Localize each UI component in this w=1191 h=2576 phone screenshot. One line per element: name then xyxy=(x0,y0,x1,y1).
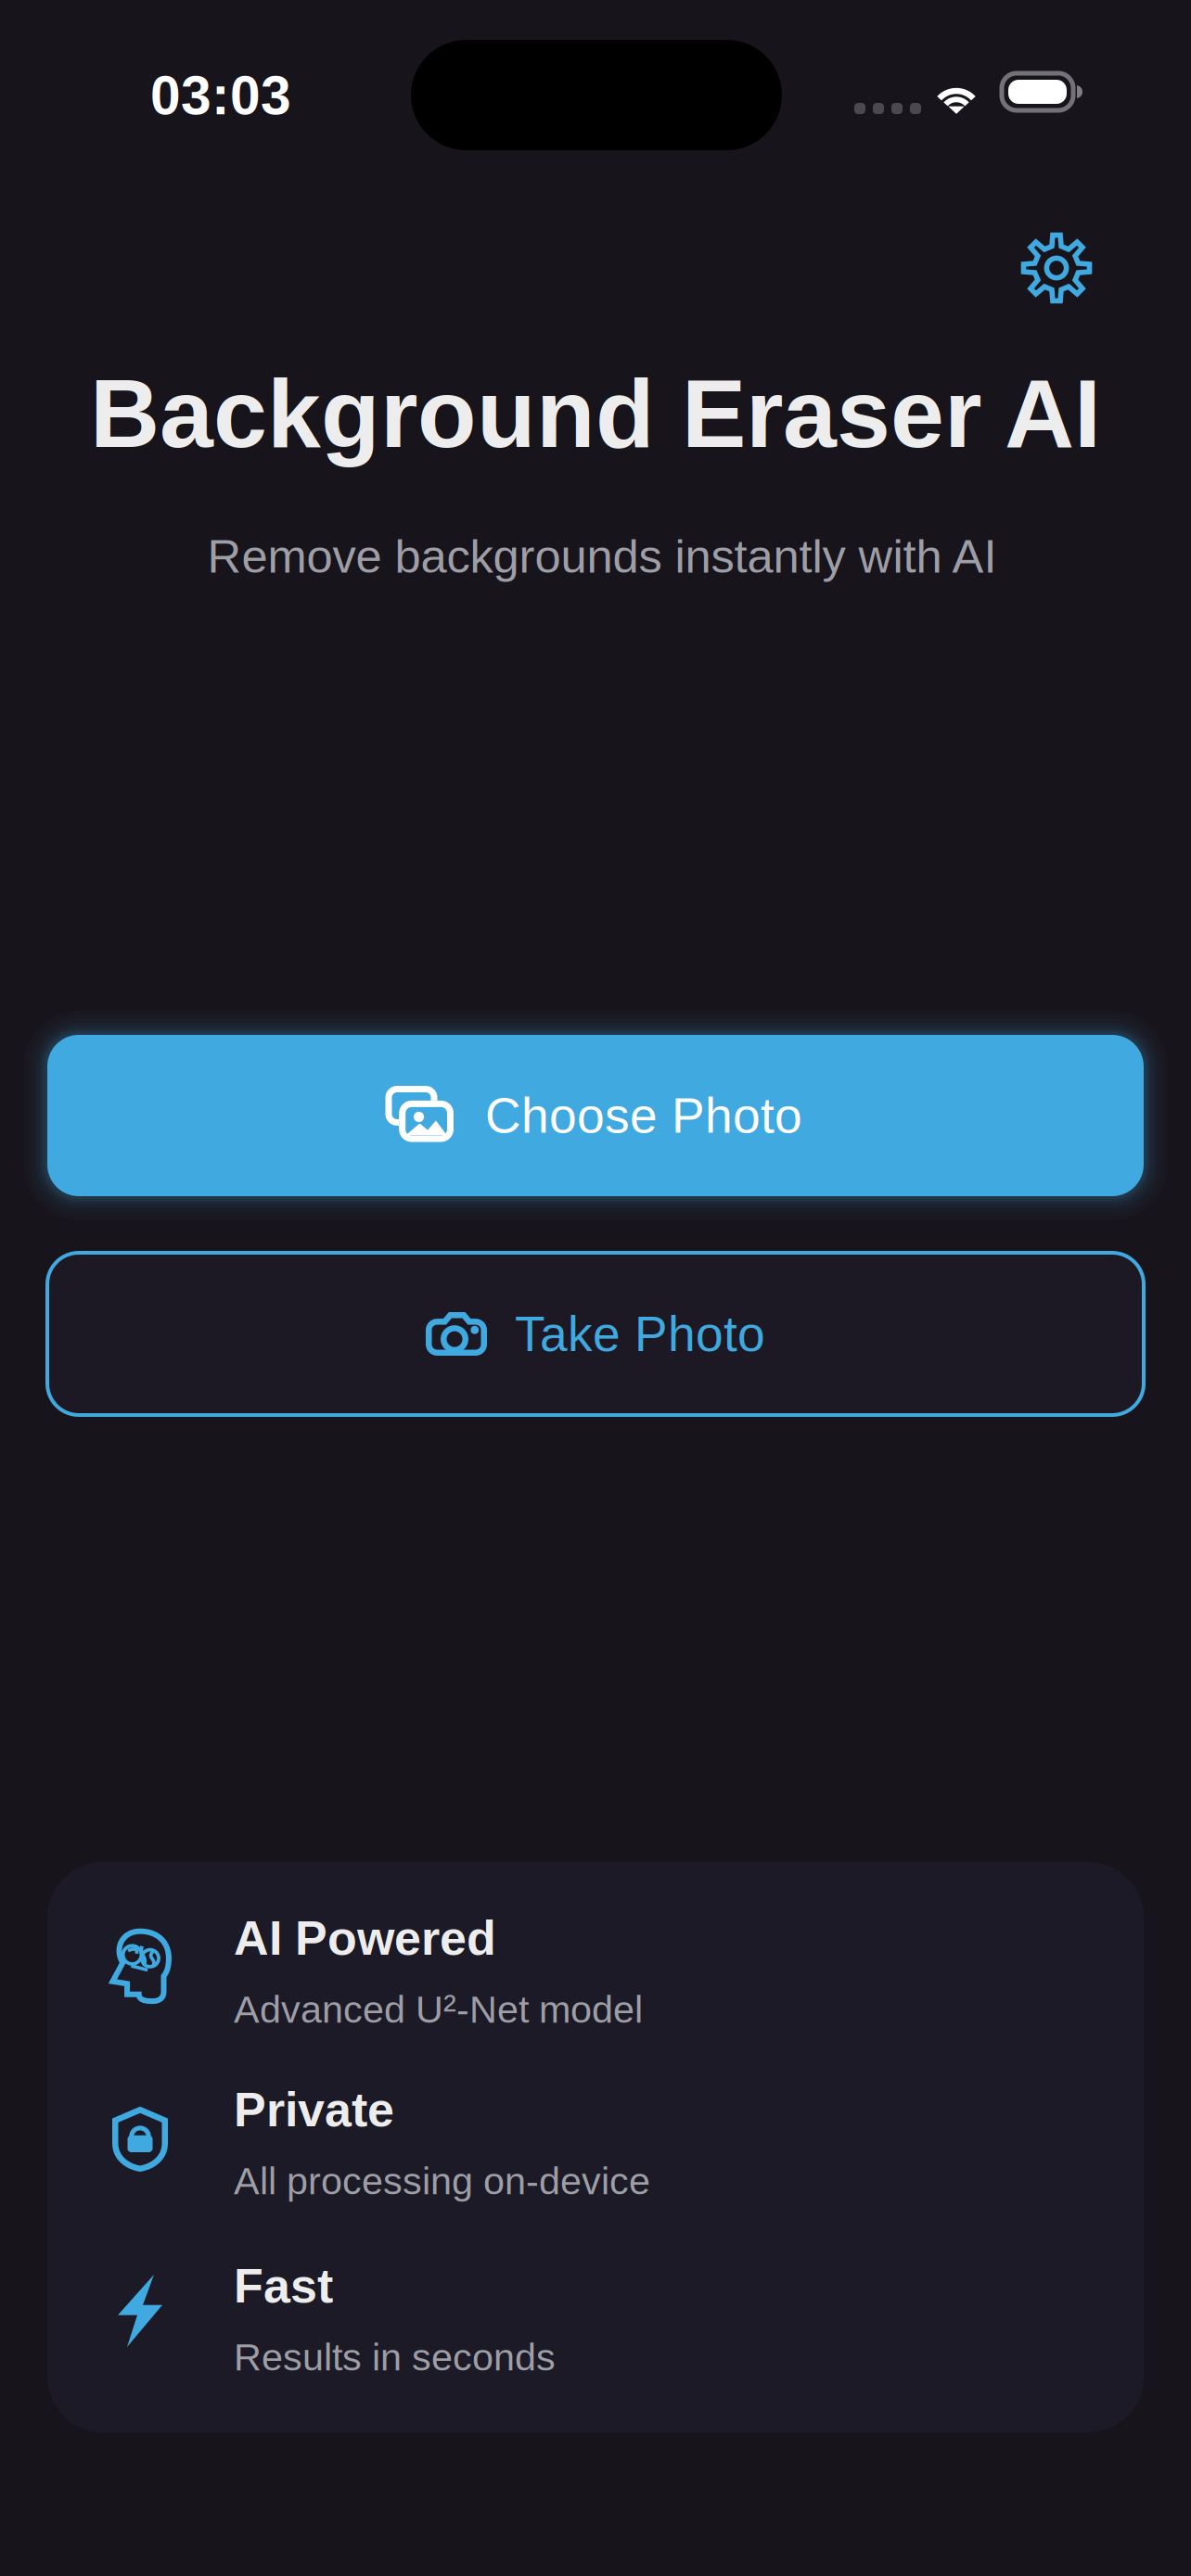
staticText: Remove backgrounds instantly with AI xyxy=(207,530,997,583)
staticText: Background Eraser AI xyxy=(90,360,1101,467)
button[interactable]: Choose Photo xyxy=(47,1035,1144,1196)
staticText: Advanced U²-Net model xyxy=(234,1988,643,2031)
staticText: Private xyxy=(234,2083,394,2137)
button[interactable]: Take Photo xyxy=(47,1253,1144,1415)
staticText: All processing on-device xyxy=(234,2160,650,2202)
staticText: AI Powered xyxy=(234,1911,496,1965)
staticText: Fast xyxy=(234,2259,333,2313)
staticText: Take Photo xyxy=(515,1306,765,1362)
staticText: Choose Photo xyxy=(485,1088,802,1143)
button[interactable]: Settings xyxy=(1003,214,1110,322)
staticText: Results in seconds xyxy=(234,2336,556,2379)
staticText: 03:03 xyxy=(150,65,291,126)
